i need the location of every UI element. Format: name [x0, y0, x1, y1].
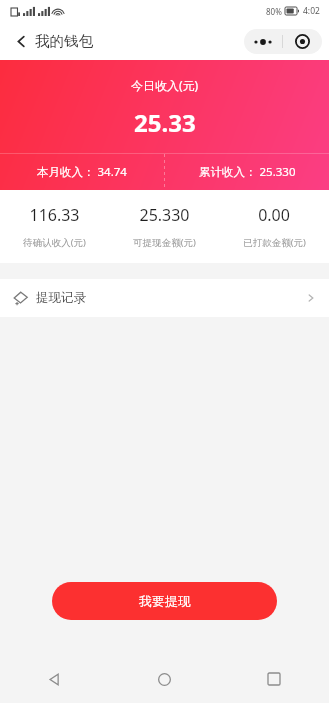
staticText: 累计收入： 25.330 [199, 164, 296, 180]
button[interactable]: Target [283, 29, 322, 54]
staticText: 我的钱包 [35, 32, 93, 50]
button[interactable]: More [244, 29, 282, 54]
staticText: 25.330 [139, 204, 190, 226]
staticText: 25.33 [134, 106, 196, 139]
button[interactable]: Back [6, 26, 36, 56]
button[interactable]: Home [109, 655, 219, 703]
staticText: 本月收入： 34.74 [37, 164, 127, 180]
staticText: 0.00 [258, 204, 290, 226]
staticText: 80% [266, 6, 282, 17]
button[interactable]: 0.00 [219, 190, 329, 263]
button[interactable]: 116.33 [0, 190, 109, 263]
button[interactable]: 提现记录 [0, 279, 329, 317]
staticText: 4:02 [303, 5, 320, 17]
staticText: 已打款金额(元) [243, 236, 306, 249]
staticText: 可提现金额(元) [133, 236, 196, 249]
staticText: 116.33 [29, 204, 80, 226]
staticText: 我要提现 [139, 593, 191, 609]
staticText: 提现记录 [36, 290, 86, 306]
button[interactable]: Recent apps [219, 655, 329, 703]
button[interactable]: 25.330 [109, 190, 219, 263]
button[interactable]: 我要提现 [52, 582, 277, 620]
button[interactable]: Back [0, 655, 109, 703]
staticText: 今日收入(元) [131, 77, 199, 93]
staticText: 待确认收入(元) [23, 236, 86, 249]
